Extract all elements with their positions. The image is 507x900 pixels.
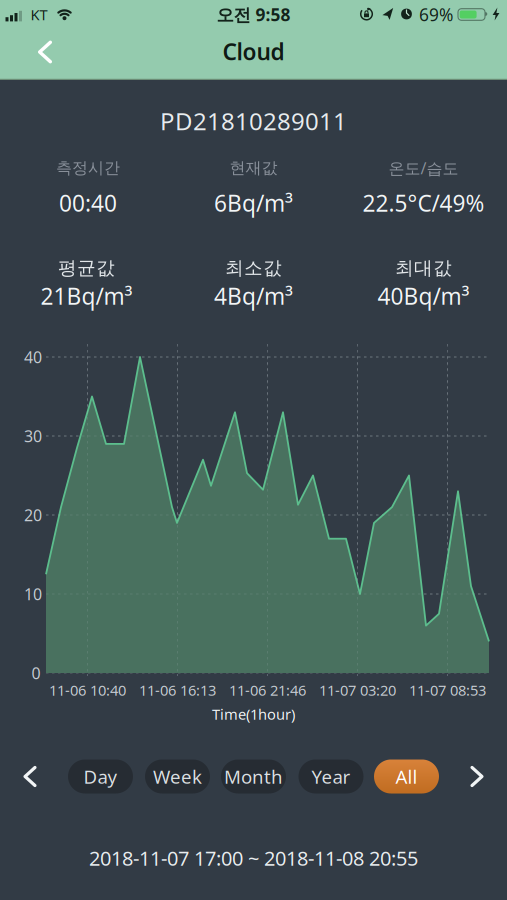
staticText: 평균값: [58, 256, 115, 279]
staticText: 최소값: [225, 256, 282, 279]
staticText: 00:40: [59, 188, 117, 218]
button[interactable]: All: [374, 759, 439, 793]
staticText: 10: [24, 583, 42, 605]
button[interactable]: Week: [145, 759, 210, 793]
staticText: Week: [153, 764, 202, 789]
staticText: 측정시간: [56, 158, 120, 178]
staticText: KT: [30, 5, 47, 24]
staticText: 21Bq/m³: [40, 281, 132, 311]
staticText: 오전 9:58: [216, 3, 290, 26]
staticText: Year: [311, 764, 350, 789]
staticText: 온도/습도: [388, 157, 458, 179]
staticText: 11-07 08:53: [409, 680, 486, 700]
staticText: 최대값: [395, 256, 452, 279]
staticText: 40Bq/m³: [377, 281, 469, 311]
staticText: 22.5°C/49%: [362, 188, 484, 218]
staticText: 11-06 10:40: [49, 680, 126, 700]
staticText: PD21810289011: [160, 105, 347, 137]
staticText: 11-06 21:46: [229, 680, 306, 700]
staticText: Time(1hour): [212, 704, 295, 724]
staticText: Cloud: [222, 36, 284, 66]
staticText: 11-06 16:13: [139, 680, 216, 700]
staticText: 0: [31, 662, 40, 684]
staticText: 4Bq/m³: [214, 281, 293, 311]
button[interactable]: Day: [68, 759, 133, 793]
button[interactable]: Month: [221, 759, 286, 793]
staticText: Day: [83, 764, 117, 789]
button[interactable]: Back: [23, 30, 67, 74]
staticText: All: [395, 764, 417, 789]
button[interactable]: Year: [298, 759, 363, 793]
staticText: 현재값: [229, 158, 277, 178]
staticText: 2018-11-07 17:00 ~ 2018-11-08 20:55: [89, 845, 418, 871]
staticText: 20: [24, 504, 42, 526]
staticText: 6Bq/m³: [214, 188, 293, 218]
staticText: Month: [224, 764, 283, 789]
button[interactable]: Next period: [462, 759, 492, 793]
staticText: 69%: [419, 3, 453, 26]
staticText: 30: [24, 425, 42, 447]
staticText: 11-07 03:20: [319, 680, 396, 700]
staticText: 40: [24, 346, 42, 368]
button[interactable]: Previous period: [15, 759, 45, 793]
